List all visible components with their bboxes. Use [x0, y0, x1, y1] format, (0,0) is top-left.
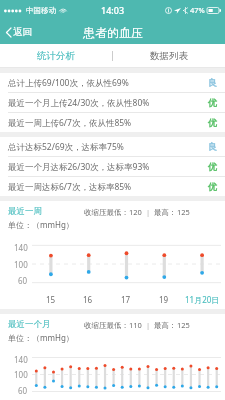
- staticText: 最近一周: [8, 206, 42, 217]
- staticText: 优: [208, 161, 217, 172]
- staticText: 100: [14, 259, 28, 270]
- staticText: 总计上传69/100次，依从性69%: [8, 77, 129, 89]
- staticText: 最近一周上传6/7次，依从性85%: [8, 117, 132, 129]
- button[interactable]: 返回: [0, 23, 38, 41]
- staticText: 100: [14, 369, 28, 380]
- staticText: 统计分析: [37, 50, 75, 62]
- staticText: 患者的血压: [83, 25, 143, 40]
- staticText: 15: [46, 294, 56, 305]
- staticText: 125: [177, 320, 190, 330]
- staticText: 最近一个月上传24/30次，依从性80%: [8, 97, 150, 109]
- button[interactable]: 最近一周上传6/7次，依从性85%: [0, 113, 225, 132]
- staticText: 优: [208, 181, 217, 192]
- staticText: 110: [129, 320, 142, 330]
- staticText: 47%: [190, 5, 205, 15]
- button[interactable]: 总计上传69/100次，依从性69%: [0, 73, 225, 92]
- staticText: 收缩压最低：: [84, 321, 129, 330]
- staticText: 最近一个月达标26/30次，达标率93%: [8, 161, 150, 173]
- staticText: 最高：: [154, 321, 177, 330]
- staticText: 140: [14, 242, 28, 253]
- staticText: 最近一个月: [8, 319, 51, 330]
- button[interactable]: 总计达标52/69次，达标率75%: [0, 137, 225, 156]
- staticText: 单位：（mmHg）: [8, 219, 74, 230]
- staticText: 60: [18, 385, 28, 396]
- button[interactable]: 最近一周达标6/7次，达标率85%: [0, 177, 225, 196]
- staticText: 14:03: [101, 4, 125, 16]
- staticText: 单位：（mmHg）: [8, 332, 74, 343]
- staticText: 19: [159, 294, 169, 305]
- staticText: 最高：: [154, 208, 177, 217]
- staticText: |: [142, 207, 154, 217]
- staticText: 140: [14, 354, 28, 365]
- staticText: 优: [208, 97, 217, 108]
- button[interactable]: 数据列表: [113, 44, 225, 68]
- staticText: 11月20日: [185, 294, 220, 305]
- button[interactable]: 最近一个月上传24/30次，依从性80%: [0, 93, 225, 112]
- staticText: 中国移动: [26, 6, 56, 15]
- staticText: 良: [208, 141, 217, 152]
- staticText: 返回: [13, 26, 32, 38]
- button[interactable]: 统计分析: [0, 44, 112, 68]
- button[interactable]: 最近一个月达标26/30次，达标率93%: [0, 157, 225, 176]
- staticText: 17: [121, 294, 131, 305]
- staticText: 60: [18, 275, 28, 286]
- staticText: |: [142, 320, 154, 330]
- staticText: 总计达标52/69次，达标率75%: [8, 141, 124, 153]
- staticText: 120: [129, 207, 142, 217]
- staticText: 良: [208, 77, 217, 88]
- staticText: 数据列表: [150, 50, 188, 62]
- staticText: 收缩压最低：: [84, 208, 129, 217]
- staticText: 优: [208, 117, 217, 128]
- staticText: 最近一周达标6/7次，达标率85%: [8, 181, 132, 193]
- staticText: 125: [177, 207, 190, 217]
- staticText: 16: [83, 294, 93, 305]
